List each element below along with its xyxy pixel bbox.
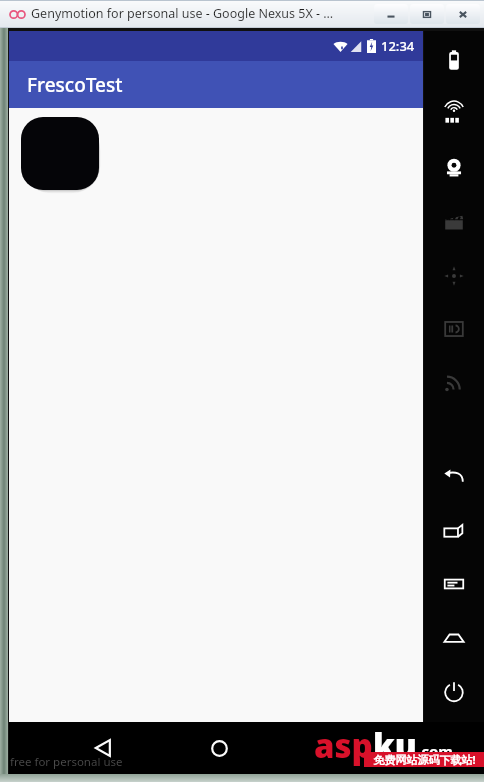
button[interactable]: Network (439, 367, 469, 397)
staticText: asp (314, 723, 373, 768)
staticText: 12:34 (381, 37, 415, 55)
button[interactable]: Minimize (374, 4, 408, 24)
button[interactable]: Home (199, 728, 239, 768)
button[interactable]: Identifiers (439, 314, 469, 344)
button[interactable]: Back (83, 728, 123, 768)
staticText: 免费网站源码下载站! (373, 752, 476, 767)
button[interactable]: Video (439, 207, 469, 237)
staticText: free for personal use (10, 754, 123, 770)
staticText: ku (373, 723, 417, 768)
staticText: FrescoTest (27, 72, 123, 98)
button[interactable]: Back (439, 462, 469, 492)
staticText: Genymotion for personal use - Google Nex… (31, 5, 334, 22)
button[interactable]: D-pad (439, 261, 469, 291)
button[interactable]: Loaded image (21, 117, 99, 190)
button[interactable]: Battery (439, 45, 469, 75)
button[interactable]: Rotate (439, 516, 469, 546)
button[interactable]: Menu (439, 569, 469, 599)
button[interactable]: GPS (439, 98, 469, 128)
staticText: .com (417, 741, 453, 761)
button[interactable]: Camera (439, 152, 469, 182)
button[interactable]: Power (439, 677, 469, 707)
button[interactable]: Maximize (410, 4, 444, 24)
button[interactable]: Close (446, 4, 480, 24)
button[interactable]: Home (439, 623, 469, 653)
